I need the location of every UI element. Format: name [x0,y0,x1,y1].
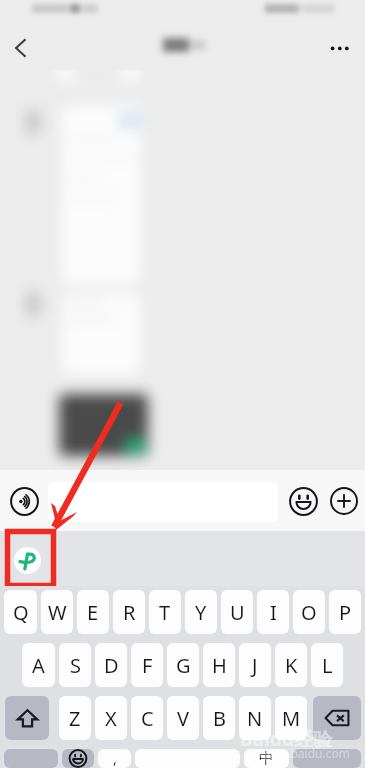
button[interactable]: More functions [324,481,364,521]
button[interactable]: Numbers and symbols [4,749,58,768]
button[interactable]: B [203,696,235,740]
button[interactable]: Sticker [14,547,41,574]
button[interactable]: O [293,590,325,634]
button[interactable]: Z [59,696,91,740]
staticText: G [176,652,191,679]
button[interactable]: R [113,590,145,634]
button[interactable]: Enter [293,749,361,768]
staticText: T [159,599,171,626]
staticText: P [339,599,352,626]
staticText: 中 [259,749,274,768]
staticText: X [105,705,117,732]
staticText: F [142,652,153,679]
staticText: J [252,652,258,679]
button[interactable]: V [167,696,199,740]
button[interactable]: G [167,643,199,687]
button[interactable]: Shift [5,696,49,740]
button[interactable]: U [221,590,253,634]
button[interactable]: T [149,590,181,634]
button[interactable]: E [77,590,109,634]
staticText: W [48,599,67,626]
button[interactable]: L [311,643,343,687]
staticText: Z [69,705,81,732]
button[interactable]: A [22,643,55,687]
staticText: R [123,599,136,626]
staticText: I [270,599,277,626]
button[interactable]: P [329,590,361,634]
staticText: C [141,705,154,732]
staticText: E [87,599,99,626]
button[interactable] [48,482,278,522]
button[interactable]: Y [185,590,217,634]
staticText: V [177,705,189,732]
button[interactable]: Space [135,749,240,768]
button[interactable]: H [203,643,235,687]
button[interactable]: J [239,643,271,687]
staticText: S [70,652,81,679]
staticText: O [301,599,317,626]
button[interactable]: W [41,590,73,634]
staticText: , [113,749,117,768]
staticText: L [322,652,333,679]
button[interactable]: More options [320,28,360,68]
button[interactable]: N [239,696,271,740]
staticText: H [212,652,227,679]
button[interactable]: D [95,643,127,687]
staticText: Q [13,599,29,626]
button[interactable]: Comma [98,749,131,768]
button[interactable]: Delete [313,696,361,740]
button[interactable]: Switch language [244,749,289,768]
staticText: Y [195,599,207,626]
button[interactable]: I [257,590,289,634]
staticText: Baidu经验 [240,726,333,752]
button[interactable]: M [275,696,307,740]
staticText: jingyan.baidu.com [246,745,350,761]
button[interactable]: K [275,643,307,687]
staticText: A [32,652,45,679]
staticText: U [230,599,245,626]
button[interactable]: Back [2,30,38,66]
staticText: D [104,652,119,679]
button[interactable]: Voice input [4,481,44,521]
button[interactable]: Q [4,590,37,634]
staticText: M [282,705,301,732]
button[interactable]: X [95,696,127,740]
button[interactable]: Emoji [283,481,323,521]
staticText: N [247,705,263,732]
button[interactable]: Emoji keyboard [62,749,94,768]
button[interactable]: C [131,696,163,740]
staticText: K [285,652,298,679]
staticText: B [213,705,226,732]
button[interactable]: S [59,643,91,687]
button[interactable]: F [131,643,163,687]
